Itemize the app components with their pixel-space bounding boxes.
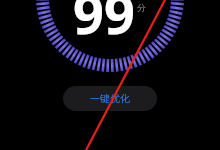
staticText: 分 [137, 2, 146, 13]
staticText: 一键优化 [90, 92, 130, 105]
staticText: 99 [73, 0, 135, 50]
button[interactable]: 一键优化 [63, 86, 157, 111]
